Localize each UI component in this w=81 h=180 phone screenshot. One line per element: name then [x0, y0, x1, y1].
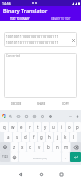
staticText: SHARE	[37, 102, 46, 106]
button[interactable]: t	[34, 122, 41, 132]
button[interactable]: r	[26, 122, 33, 132]
staticText: k	[64, 134, 67, 140]
button[interactable]: Home	[37, 170, 45, 178]
staticText: p	[76, 124, 79, 130]
staticText: u	[52, 124, 55, 130]
button[interactable]: Emoji	[11, 152, 18, 162]
button[interactable]: Clipboard	[40, 114, 45, 119]
button[interactable]: s	[13, 132, 21, 142]
staticText: TEXT TO BINARY	[10, 17, 30, 20]
staticText: s	[16, 134, 19, 140]
button[interactable]: b	[44, 142, 52, 152]
staticText: o	[68, 124, 71, 130]
button[interactable]: BINARY TO TEXT	[40, 15, 81, 21]
button[interactable]: i	[58, 122, 65, 132]
staticText: w	[11, 124, 15, 130]
button[interactable]: Shift	[0, 142, 10, 152]
staticText: r	[29, 124, 31, 130]
button[interactable]: Settings	[48, 114, 53, 119]
staticText: Converted	[6, 54, 21, 58]
staticText: Binary Translator	[3, 7, 48, 14]
button[interactable]: Clear text	[70, 37, 76, 43]
button[interactable]: Recent apps	[57, 170, 65, 178]
staticText: c	[29, 144, 32, 150]
button[interactable]: q	[0, 122, 8, 132]
button[interactable]: l	[70, 132, 77, 142]
button[interactable]: o	[66, 122, 73, 132]
button[interactable]: f	[30, 132, 37, 142]
staticText: .	[65, 155, 66, 160]
button[interactable]: Search	[8, 114, 13, 119]
staticText: BINARY TO TEXT	[51, 17, 71, 20]
button[interactable]: More options	[68, 114, 73, 119]
button[interactable]: u	[50, 122, 57, 132]
button[interactable]: e	[18, 122, 25, 132]
staticText: n	[56, 144, 59, 150]
staticText: t	[37, 124, 39, 130]
staticText: English (US)	[33, 156, 47, 159]
staticText: ?123	[2, 155, 8, 159]
button[interactable]: Voice input	[75, 114, 80, 119]
button[interactable]: GIF	[16, 114, 21, 119]
button[interactable]: j	[54, 132, 61, 142]
button[interactable]: k	[62, 132, 69, 142]
button[interactable]: TEXT TO BINARY	[0, 15, 40, 21]
button[interactable]: x	[19, 142, 26, 152]
button[interactable]: h	[46, 132, 53, 142]
button[interactable]: a	[4, 132, 12, 142]
staticText: z	[13, 144, 16, 150]
staticText: g	[40, 134, 43, 140]
button[interactable]: c	[27, 142, 34, 152]
staticText: a	[7, 134, 10, 140]
button[interactable]: DECODE	[4, 98, 29, 110]
button[interactable]: Translate	[32, 114, 37, 119]
button[interactable]: Enter	[70, 152, 81, 162]
staticText: v	[38, 144, 41, 150]
button[interactable]: Google	[1, 113, 7, 119]
button[interactable]: v	[35, 142, 43, 152]
button[interactable]: Backspace	[71, 142, 81, 152]
staticText: l	[73, 134, 75, 140]
staticText: h	[48, 134, 51, 140]
button[interactable]: y	[42, 122, 49, 132]
button[interactable]: w	[9, 122, 17, 132]
staticText: e	[20, 124, 23, 130]
button[interactable]: d	[22, 132, 29, 142]
staticText: y	[44, 124, 47, 130]
button[interactable]: g	[38, 132, 45, 142]
staticText: j	[57, 134, 59, 140]
staticText: COPY	[62, 102, 69, 106]
staticText: d	[24, 134, 27, 140]
staticText: q	[3, 124, 6, 130]
staticText: 10010110111100111001011011	[6, 41, 59, 45]
staticText: DECODE	[11, 102, 22, 106]
button[interactable]: Back	[16, 170, 24, 178]
button[interactable]: p	[74, 122, 81, 132]
button[interactable]: ?123	[0, 152, 10, 162]
staticText: 10010011100010010110100111	[6, 35, 59, 39]
staticText: b	[47, 144, 50, 150]
button[interactable]: SHARE	[29, 98, 53, 110]
button[interactable]: n	[53, 142, 61, 152]
button[interactable]: Stickers	[24, 114, 29, 119]
staticText: i	[61, 124, 63, 130]
button[interactable]: m	[62, 142, 70, 152]
button[interactable]: z	[11, 142, 18, 152]
staticText: m	[64, 144, 69, 150]
staticText: f	[33, 134, 35, 140]
button[interactable]: COPY	[53, 98, 77, 110]
button[interactable]: English (US)	[19, 152, 61, 162]
staticText: 14:56	[2, 1, 11, 6]
staticText: x	[21, 144, 24, 150]
